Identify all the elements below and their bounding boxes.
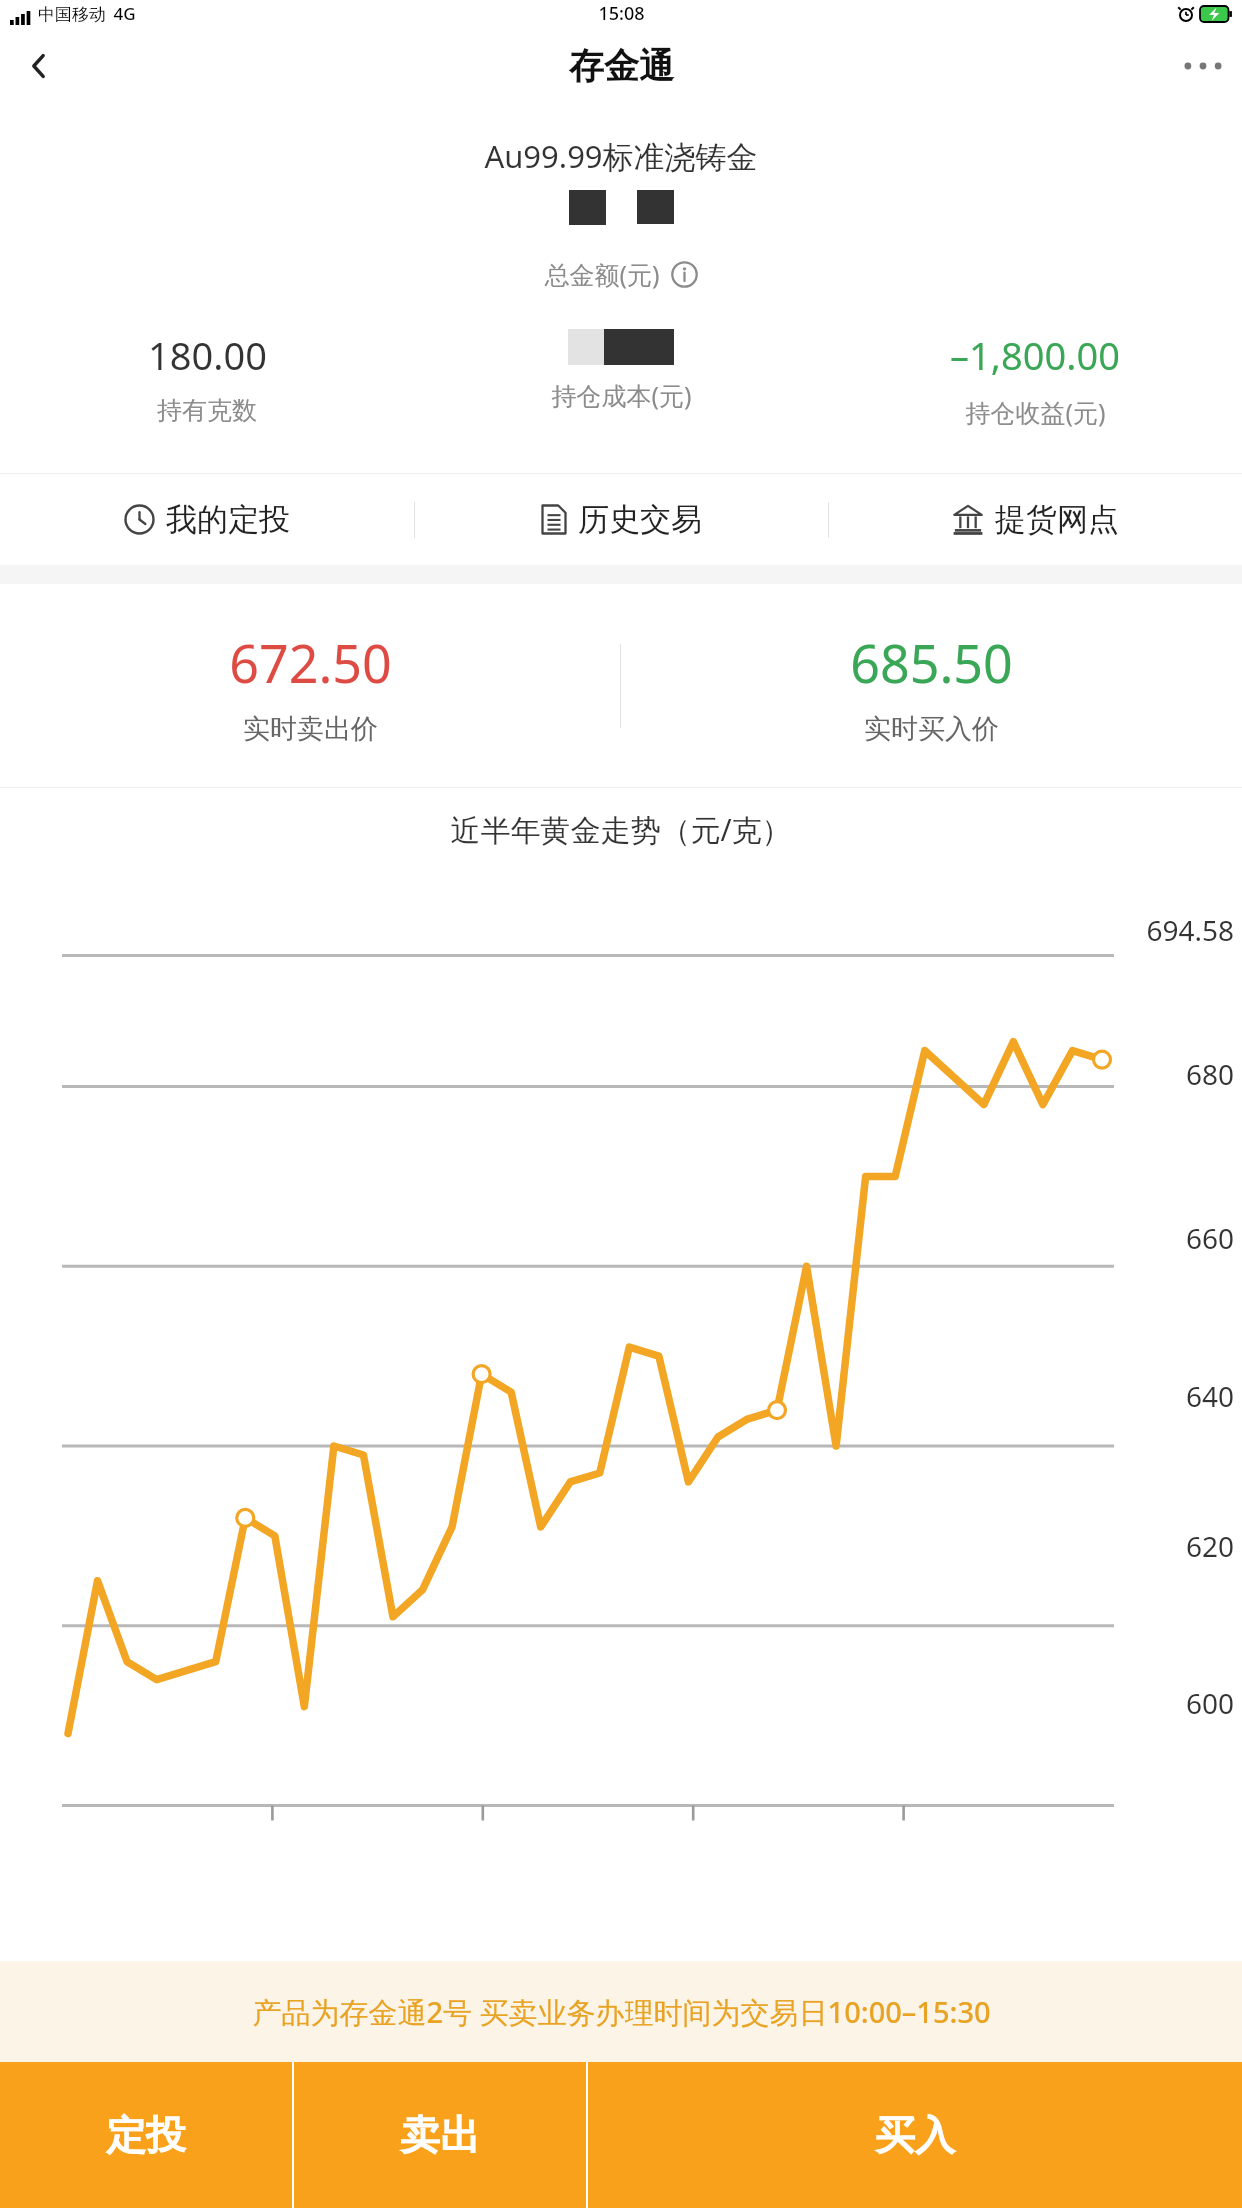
staticText: 694.58 (1146, 911, 1234, 949)
staticText: 买入 (875, 2110, 955, 2160)
staticText: 4G (113, 2, 136, 25)
button[interactable]: 卖出 (294, 2062, 586, 2208)
staticText: 实时买入价 (864, 712, 999, 746)
staticText: 实时卖出价 (243, 712, 378, 746)
staticText: 672.50 (229, 627, 392, 698)
staticText: 持有克数 (157, 395, 257, 426)
staticText: 持仓收益(元) (965, 395, 1106, 429)
staticText: 产品为存金通2号 买卖业务办理时间为交易日10:00–15:30 (252, 1992, 991, 2032)
staticText: 提货网点 (995, 500, 1119, 539)
staticText: 定投 (106, 2110, 186, 2160)
staticText: 180.00 (148, 329, 267, 381)
button[interactable]: 我的定投 (0, 474, 414, 565)
staticText: 历史交易 (578, 500, 702, 539)
staticText: Au99.99标准浇铸金 (0, 135, 1242, 177)
button[interactable]: 返回 (0, 27, 78, 105)
staticText: 640 (1185, 1377, 1234, 1415)
staticText: 卖出 (400, 2110, 480, 2160)
staticText: 680 (1185, 1055, 1234, 1093)
staticText: 持仓成本(元) (551, 378, 692, 412)
button[interactable]: 提货网点 (829, 474, 1242, 565)
button[interactable]: 总金额说明 (671, 261, 698, 288)
staticText: –1,800.00 (950, 329, 1120, 381)
button[interactable]: 更多 (1164, 27, 1242, 105)
staticText: 近半年黄金走势（元/克） (0, 809, 1242, 850)
staticText: 总金额(元) (544, 257, 660, 291)
staticText: 15:08 (598, 1, 645, 26)
button[interactable]: 定投 (0, 2062, 292, 2208)
staticText: 600 (1185, 1684, 1234, 1722)
staticText: 中国移动 (38, 4, 106, 25)
staticText: 660 (1185, 1219, 1234, 1257)
staticText: 存金通 (569, 44, 674, 88)
staticText: 我的定投 (166, 500, 290, 539)
staticText: 685.50 (850, 627, 1013, 698)
button[interactable]: 历史交易 (415, 474, 828, 565)
staticText: 620 (1185, 1527, 1234, 1565)
button[interactable]: 买入 (588, 2062, 1242, 2208)
